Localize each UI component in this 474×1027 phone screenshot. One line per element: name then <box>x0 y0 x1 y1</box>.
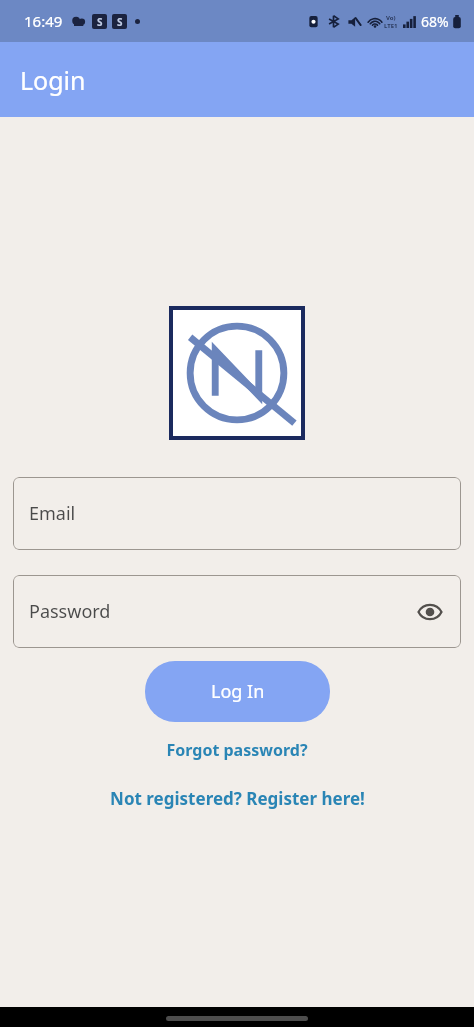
staticText: 68% <box>421 12 449 31</box>
staticText: S <box>117 15 123 29</box>
staticText: Vo) <box>386 14 396 22</box>
staticText: 16:49 <box>24 11 63 31</box>
button[interactable]: Password <box>13 575 461 648</box>
staticText: Login <box>20 63 86 97</box>
button[interactable]: Log In <box>145 661 330 722</box>
staticText: Not registered? Register here! <box>110 787 365 810</box>
button[interactable]: Email <box>13 477 461 550</box>
staticText: LTE1 <box>384 22 398 30</box>
staticText: S <box>97 15 103 29</box>
button[interactable]: Forgot password? <box>0 739 474 761</box>
staticText: Log In <box>211 679 265 704</box>
staticText: Password <box>29 599 111 624</box>
button[interactable]: Show password <box>413 595 447 629</box>
staticText: Forgot password? <box>166 739 308 761</box>
button[interactable]: Not registered? Register here! <box>0 787 474 810</box>
staticText: Email <box>29 501 76 526</box>
